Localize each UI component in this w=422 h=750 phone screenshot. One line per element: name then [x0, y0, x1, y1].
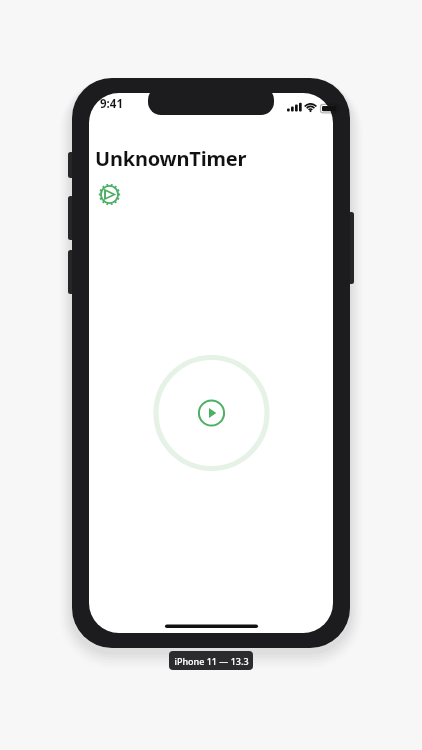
button[interactable]: Start timer — [155, 357, 267, 469]
staticText: 9:41 — [100, 96, 123, 112]
button[interactable]: Settings — [97, 182, 122, 207]
staticText: UnknownTimer — [95, 145, 247, 172]
staticText: iPhone 11 — 13.3 — [174, 655, 249, 667]
